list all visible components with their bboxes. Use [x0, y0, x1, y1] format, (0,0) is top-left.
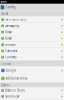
staticText: Config. [5, 5, 16, 9]
button[interactable]: Dados e Sincro. [0, 88, 64, 94]
staticText: Browser [5, 43, 16, 46]
button[interactable]: Wi-Fi Auto-Sincr. [0, 17, 64, 23]
button[interactable]: Contacts [0, 54, 64, 61]
staticText: Geral [1, 12, 8, 15]
staticText: Adicionar conta [6, 77, 27, 80]
staticText: Calendar [5, 49, 17, 53]
staticText: Dados [1, 83, 9, 87]
staticText: Gmail [5, 30, 12, 34]
button[interactable]: Adicionar conta [0, 75, 64, 83]
staticText: Messaging [5, 24, 19, 28]
button[interactable]: Calendar [0, 48, 64, 54]
button[interactable]: Gmail [0, 29, 64, 35]
staticText: Wi-Fi Auto-Sincr. [5, 18, 27, 21]
button[interactable]: Gmail [0, 35, 64, 42]
staticText: Dados e Sincro. [5, 89, 26, 92]
staticText: Sincronizar [5, 95, 19, 98]
staticText: Gmail [5, 37, 12, 40]
staticText: Google [6, 69, 17, 72]
staticText: Contas [1, 62, 10, 65]
button[interactable]: Browser [0, 42, 64, 48]
button[interactable]: Messaging [0, 23, 64, 29]
button[interactable]: Sincronizar [0, 94, 64, 100]
button[interactable]: Google [0, 67, 64, 75]
staticText: Contacts [5, 55, 16, 59]
